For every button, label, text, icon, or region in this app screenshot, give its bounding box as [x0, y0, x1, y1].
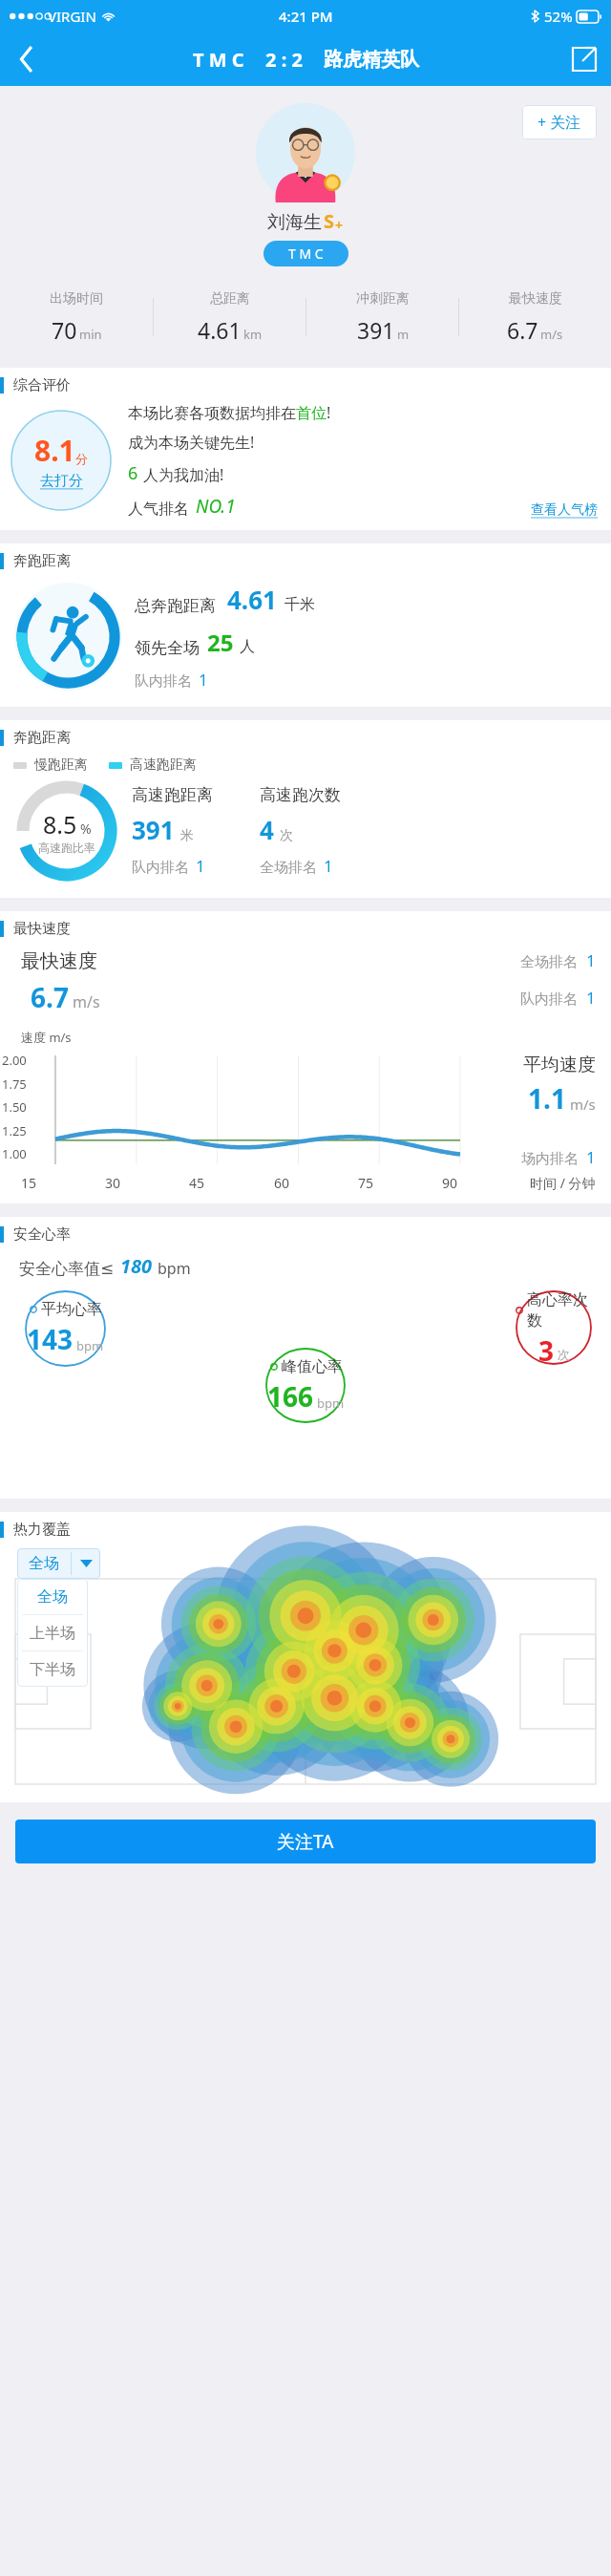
staticText: 队内排名 [132, 859, 189, 877]
staticText: 1 [586, 1146, 596, 1168]
staticText: 速度 m/s [21, 1029, 72, 1046]
staticText: 25 [207, 627, 234, 658]
staticText: 6.7 [31, 979, 69, 1015]
staticText: 冲刺距离 [356, 290, 410, 308]
staticText: 高速跑比率 [38, 841, 95, 855]
staticText: 90 [442, 1174, 458, 1192]
staticText: + [335, 216, 344, 234]
staticText: 1 [586, 987, 596, 1009]
staticText: 8.5 [43, 808, 77, 841]
staticText: 热力覆盖 [13, 1521, 71, 1539]
staticText: 奔跑距离 [13, 552, 71, 570]
staticText: 391 [357, 315, 395, 345]
button[interactable]: 查看人气榜 [531, 501, 598, 519]
staticText: 最快速度 [21, 949, 97, 973]
staticText: 4.61 [227, 583, 277, 616]
button[interactable]: 全场 [17, 1579, 88, 1614]
staticText: 6 [128, 461, 138, 485]
staticText: bpm [76, 1337, 104, 1354]
staticText: 平均速度 [523, 1054, 596, 1076]
staticText: km [243, 326, 263, 343]
staticText: 人 [240, 637, 255, 656]
staticText: 1 [586, 949, 596, 971]
staticText: 队内排名 [520, 990, 578, 1009]
staticText: 最快速度 [509, 290, 562, 308]
staticText: 平均心率 [41, 1300, 102, 1319]
staticText: bpm [317, 1394, 345, 1412]
staticText: 总奔跑距离 [135, 596, 216, 616]
staticText: 奔跑距离 [13, 729, 71, 747]
staticText: 全场 [29, 1554, 59, 1573]
staticText: 2.00 [2, 1052, 27, 1069]
staticText: 1.1 [528, 1080, 566, 1117]
staticText: 综合评价 [13, 376, 71, 394]
staticText: 6.7 [507, 315, 538, 345]
staticText: 4.61 [198, 315, 242, 345]
staticText: 1.50 [2, 1098, 27, 1116]
staticText: 高速跑距离 [130, 756, 197, 774]
staticText: T M C [288, 245, 324, 263]
button[interactable]: Back [0, 32, 53, 86]
button[interactable]: Share [558, 32, 611, 86]
staticText: m/s [540, 326, 563, 343]
staticText: m [397, 326, 410, 343]
staticText: 166 [267, 1378, 314, 1415]
staticText: 75 [358, 1174, 374, 1192]
staticText: + 关注 [537, 112, 581, 133]
staticText: 安全心率 [13, 1225, 71, 1244]
staticText: 52% [544, 7, 573, 26]
staticText: m/s [73, 991, 100, 1012]
staticText: 高心率次数 [527, 1290, 592, 1331]
staticText: 路虎精英队 [324, 48, 419, 72]
staticText: 查看人气榜 [531, 501, 598, 519]
staticText: 峰值心率 [282, 1357, 343, 1376]
other: Expand [72, 1549, 100, 1578]
staticText: 1.00 [2, 1145, 27, 1162]
staticText: 3 [538, 1332, 555, 1365]
staticText: 米 [180, 827, 194, 844]
staticText: 次 [280, 827, 293, 844]
staticText: S [324, 208, 335, 234]
staticText: 45 [189, 1174, 205, 1192]
staticText: 队内排名 [135, 672, 192, 691]
staticText: 70 [52, 315, 77, 345]
staticText: 60 [274, 1174, 290, 1192]
staticText: 领先全场 [135, 638, 200, 658]
button[interactable]: T M C [263, 241, 348, 266]
staticText: 高速跑距离 [132, 785, 213, 805]
staticText: bpm [158, 1258, 191, 1279]
staticText: 次 [558, 1347, 570, 1362]
staticText: 15 [21, 1174, 37, 1192]
staticText: 8.1 [34, 431, 75, 470]
staticText: 总距离 [210, 290, 250, 308]
staticText: NO.1 [196, 494, 236, 519]
staticText: 391 [132, 813, 175, 846]
staticText: 2 : 2 [265, 47, 303, 73]
staticText: 1 [199, 669, 208, 691]
staticText: 4:21 PM [279, 7, 333, 26]
staticText: 1 [196, 855, 205, 877]
button[interactable]: 全场 [17, 1548, 100, 1579]
staticText: m/s [570, 1095, 596, 1114]
staticText: 下半场 [30, 1660, 75, 1679]
staticText: 刘海生 [267, 211, 322, 234]
staticText: 首位 [296, 404, 327, 423]
staticText: % [80, 820, 92, 838]
button[interactable]: + 关注 [522, 105, 597, 139]
staticText: 最快速度 [13, 920, 71, 938]
staticText: 千米 [284, 595, 315, 614]
button[interactable]: 8.1 [10, 409, 113, 512]
button[interactable]: 关注TA [15, 1820, 596, 1863]
staticText: 场内排名 [521, 1150, 579, 1168]
staticText: 关注TA [277, 1829, 334, 1854]
staticText: ! [327, 402, 331, 423]
staticText: 成为本场关键先生! [128, 432, 255, 453]
button[interactable]: 下半场 [17, 1651, 88, 1687]
staticText: 出场时间 [50, 290, 103, 308]
staticText: 全场 [37, 1587, 68, 1607]
staticText: 慢跑距离 [34, 756, 88, 774]
staticText: 人为我加油! [143, 464, 224, 485]
button[interactable]: 上半场 [17, 1615, 88, 1650]
staticText: min [79, 326, 102, 343]
staticText: 分 [75, 451, 88, 466]
